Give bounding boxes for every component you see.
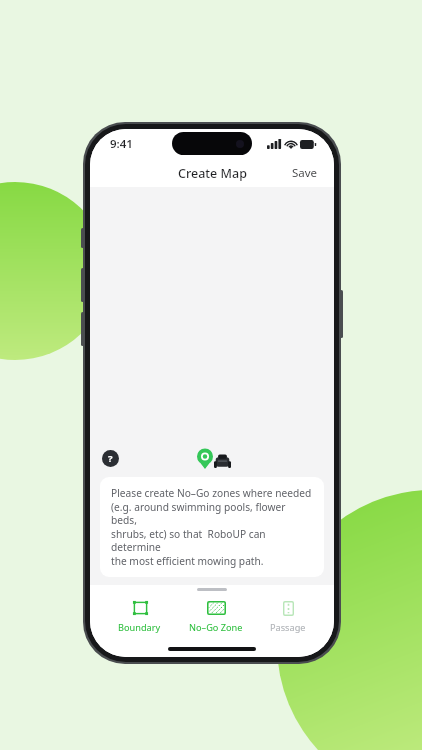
staticText: Boundary bbox=[118, 621, 161, 634]
button[interactable]: Help bbox=[102, 450, 119, 467]
button[interactable]: No–Go Zone bbox=[179, 597, 253, 636]
staticText: 9:41 bbox=[110, 136, 133, 152]
button[interactable]: Save bbox=[276, 161, 334, 185]
staticText: shrubs, etc) so that RoboUP can determin… bbox=[111, 527, 313, 554]
staticText: ? bbox=[108, 452, 113, 465]
button[interactable]: Please create No–Go zones where needed bbox=[100, 477, 324, 577]
staticText: Please create No–Go zones where needed bbox=[111, 486, 312, 500]
button[interactable]: Boundary bbox=[108, 597, 171, 636]
staticText: the most efficient mowing path. bbox=[111, 554, 264, 568]
staticText: No–Go Zone bbox=[189, 621, 243, 634]
staticText: (e.g. around swimming pools, flower beds… bbox=[111, 500, 313, 527]
button[interactable]: Passage bbox=[260, 597, 316, 636]
staticText: Create Map bbox=[178, 165, 247, 182]
staticText: Save bbox=[292, 165, 318, 181]
staticText: Passage bbox=[270, 621, 306, 634]
